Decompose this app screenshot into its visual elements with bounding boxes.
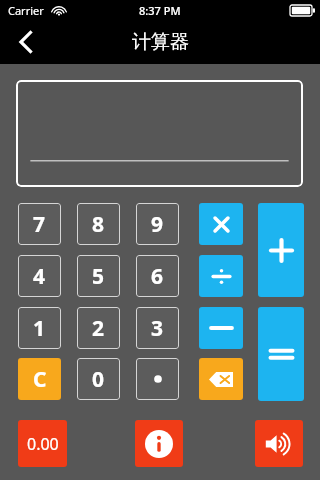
button[interactable]: C — [18, 358, 61, 400]
button[interactable]: Minus — [199, 307, 243, 349]
button[interactable]: Equals — [258, 307, 304, 401]
staticText: 0.00 — [27, 433, 59, 455]
staticText: 9 — [151, 210, 164, 239]
button[interactable]: Divide — [199, 255, 243, 297]
button[interactable]: Display — [16, 80, 303, 187]
button[interactable]: 5 — [77, 255, 120, 297]
staticText: 8:37 PM — [139, 3, 181, 18]
staticText: 0 — [92, 365, 105, 394]
staticText: 4 — [33, 262, 46, 291]
button[interactable]: 9 — [136, 203, 179, 245]
button[interactable]: Backspace — [199, 358, 243, 400]
button[interactable]: 0 — [77, 358, 120, 400]
staticText: 3 — [151, 314, 164, 343]
button[interactable]: 6 — [136, 255, 179, 297]
staticText: Carrier — [8, 3, 44, 18]
button[interactable]: Multiply — [199, 203, 243, 245]
staticText: 5 — [92, 262, 105, 291]
button[interactable]: Decimal point — [136, 358, 179, 400]
button[interactable]: 1 — [18, 307, 61, 349]
button[interactable]: Plus — [258, 203, 304, 297]
button[interactable]: 3 — [136, 307, 179, 349]
button[interactable]: 0.00 — [18, 420, 67, 467]
staticText: 8 — [92, 210, 105, 239]
staticText: 6 — [151, 262, 164, 291]
button[interactable]: 2 — [77, 307, 120, 349]
staticText: 1 — [33, 314, 46, 343]
button[interactable]: 4 — [18, 255, 61, 297]
staticText: 计算器 — [132, 30, 189, 54]
button[interactable]: Info — [135, 420, 183, 467]
button[interactable]: 7 — [18, 203, 61, 245]
button[interactable]: 8 — [77, 203, 120, 245]
staticText: 7 — [33, 210, 46, 239]
staticText: 2 — [92, 314, 105, 343]
staticText: C — [33, 365, 47, 394]
button[interactable]: Sound — [255, 420, 303, 467]
button[interactable]: Back — [6, 22, 46, 62]
